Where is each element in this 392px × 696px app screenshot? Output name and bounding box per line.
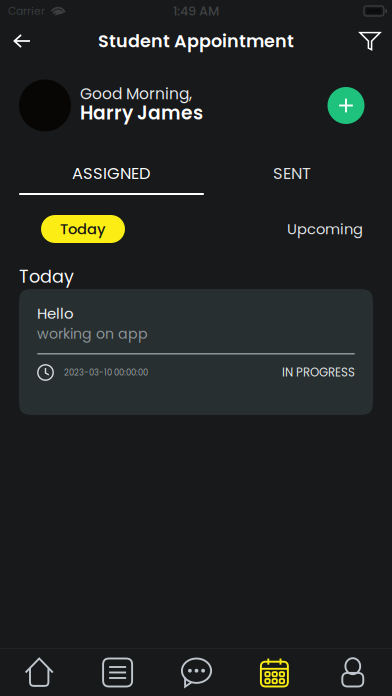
staticText: ASSIGNED	[72, 162, 151, 185]
staticText: Good Morning,	[80, 83, 192, 105]
button[interactable]: Hello	[19, 289, 373, 415]
button[interactable]: Profile	[314, 649, 392, 696]
staticText: Upcoming	[287, 219, 363, 239]
staticText: IN PROGRESS	[282, 364, 355, 381]
staticText: 1:49 AM	[173, 2, 219, 20]
staticText: Hello	[37, 303, 74, 324]
staticText: SENT	[273, 162, 311, 185]
button[interactable]: ASSIGNED	[18, 151, 205, 198]
button[interactable]: Home	[0, 649, 78, 696]
button[interactable]: Messages	[157, 649, 235, 696]
staticText: Today	[19, 264, 74, 289]
staticText: Carrier	[8, 3, 45, 18]
staticText: Today	[60, 219, 106, 239]
staticText: working on app	[37, 324, 148, 344]
button[interactable]: Today	[41, 215, 125, 243]
button[interactable]: Add appointment	[324, 83, 368, 127]
staticText: Harry James	[80, 100, 203, 126]
staticText: 2023-03-10 00:00:00	[64, 367, 148, 378]
button[interactable]: Tasks	[78, 649, 157, 696]
button[interactable]: Upcoming	[283, 215, 367, 243]
button[interactable]: Filter	[348, 22, 392, 60]
staticText: Student Appointment	[98, 29, 294, 53]
button[interactable]: SENT	[205, 151, 379, 198]
button[interactable]: Calendar	[235, 649, 314, 696]
button[interactable]: Back	[0, 22, 44, 60]
